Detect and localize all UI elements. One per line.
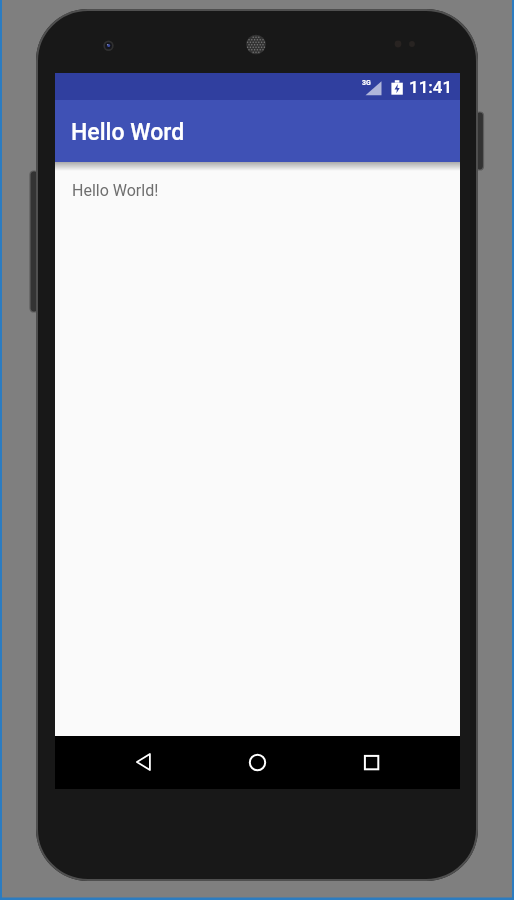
button[interactable] (237, 742, 277, 782)
button[interactable] (351, 742, 391, 782)
staticText: Hello Word (71, 119, 185, 146)
button[interactable]: Hello Word (55, 100, 460, 162)
button[interactable] (123, 742, 163, 782)
staticText: Hello World! (72, 181, 159, 200)
staticText: 3G (362, 79, 371, 87)
staticText: 11:41 (409, 77, 453, 97)
